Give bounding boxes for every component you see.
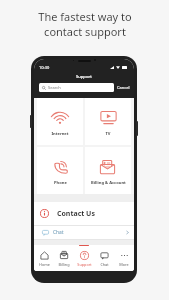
staticText: Contact Us xyxy=(57,209,95,219)
button[interactable]: Chat xyxy=(34,226,134,239)
staticText: Billing & Account xyxy=(91,180,126,186)
staticText: Billing xyxy=(58,262,70,267)
button[interactable]: Phone xyxy=(37,147,83,194)
button[interactable]: Internet xyxy=(37,98,83,145)
staticText: TV xyxy=(105,131,111,137)
staticText: Chat xyxy=(53,229,64,236)
staticText: contact support xyxy=(44,24,126,39)
staticText: More xyxy=(119,262,129,267)
button[interactable]: More xyxy=(114,245,134,271)
button[interactable]: TV xyxy=(85,98,131,145)
staticText: Internet xyxy=(51,131,69,137)
staticText: Search xyxy=(48,85,61,90)
button[interactable]: Chat xyxy=(94,245,114,271)
button[interactable]: Support xyxy=(74,245,94,271)
staticText: Cancel xyxy=(117,85,130,90)
button[interactable]: Cancel xyxy=(117,85,130,90)
staticText: Home xyxy=(39,262,50,267)
button[interactable]: Billing xyxy=(54,245,74,271)
button[interactable]: Home xyxy=(34,245,54,271)
staticText: Support xyxy=(76,74,92,80)
staticText: Support xyxy=(77,262,92,267)
staticText: The fastest way to xyxy=(38,9,132,24)
staticText: 10:30 xyxy=(39,65,50,70)
staticText: Chat xyxy=(100,262,109,267)
button[interactable]: Contact Us xyxy=(34,202,134,225)
staticText: Phone xyxy=(54,180,67,186)
button[interactable]: Search xyxy=(39,83,114,92)
button[interactable]: Billing & Account xyxy=(85,147,131,194)
